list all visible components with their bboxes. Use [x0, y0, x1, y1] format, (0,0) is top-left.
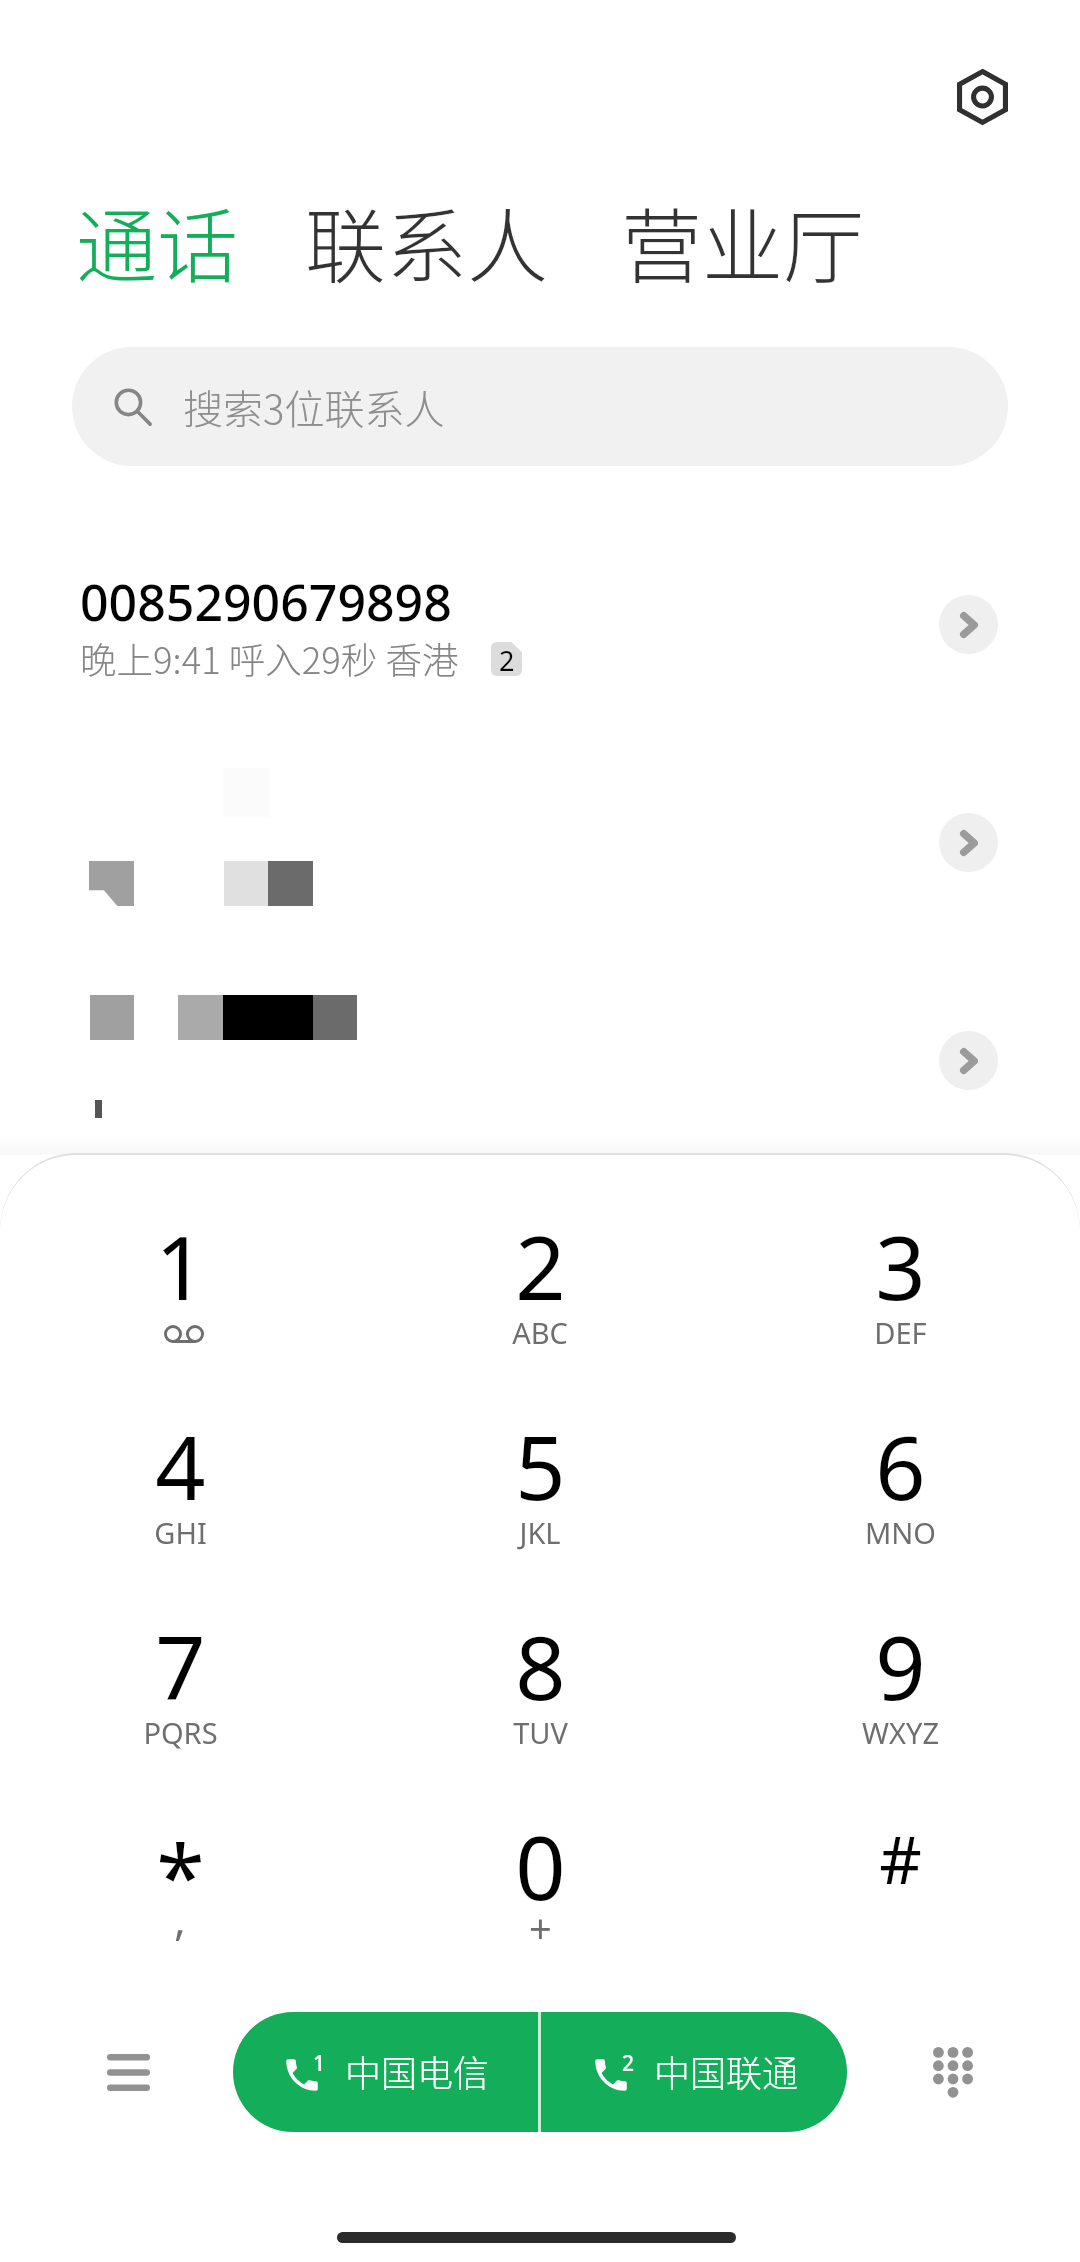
staticText: 3 [875, 1206, 926, 1326]
button[interactable]: 5 [360, 1399, 720, 1599]
staticText: 8 [515, 1606, 566, 1726]
button[interactable]: Call details [939, 1031, 998, 1090]
button[interactable]: 1 [233, 2012, 538, 2132]
staticText: 4 [155, 1406, 206, 1526]
staticText: 0085290679898 [80, 568, 452, 636]
staticText: ABC [512, 1313, 568, 1352]
staticText: JKL [519, 1513, 561, 1552]
button[interactable]: 6 [720, 1399, 1080, 1599]
staticText: + [529, 1900, 552, 1954]
button[interactable]: 联系人 [305, 182, 549, 299]
staticText: PQRS [143, 1713, 218, 1752]
button[interactable]: Call details [939, 595, 998, 654]
button[interactable]: 3 [720, 1199, 1080, 1399]
staticText: 搜索3位联系人 [183, 378, 445, 436]
button[interactable]: 1 [0, 1199, 360, 1399]
staticText: 2 [515, 1206, 566, 1326]
staticText: TUV [513, 1713, 568, 1752]
button[interactable]: 2 [541, 2012, 847, 2132]
button[interactable]: 4 [0, 1399, 360, 1599]
staticText: 9 [875, 1606, 926, 1726]
staticText: 2 [622, 2049, 635, 2078]
staticText: 1 [155, 1206, 206, 1326]
staticText: 中国联通 [654, 2045, 799, 2097]
button[interactable]: 2 [360, 1199, 720, 1399]
staticText: 7 [155, 1606, 206, 1726]
button[interactable]: Call details [939, 813, 998, 872]
button[interactable]: 9 [720, 1599, 1080, 1799]
staticText: * [156, 1815, 205, 1935]
button[interactable]: 0 [360, 1799, 720, 1999]
staticText: DEF [874, 1313, 927, 1352]
button[interactable]: Settings [934, 49, 1030, 145]
staticText: GHI [154, 1513, 207, 1552]
button[interactable]: 搜索3位联系人 [72, 347, 1008, 466]
staticText: # [879, 1813, 922, 1903]
button[interactable]: 0085290679898 [0, 515, 1080, 733]
staticText: 5 [515, 1406, 566, 1526]
button[interactable]: 7 [0, 1599, 360, 1799]
staticText: MNO [865, 1513, 936, 1552]
button[interactable]: # [720, 1799, 1080, 1999]
staticText: 中国电信 [345, 2045, 490, 2097]
button[interactable]: 通话 [76, 182, 239, 299]
button[interactable]: 8 [360, 1599, 720, 1799]
button[interactable]: 营业厅 [621, 182, 865, 299]
button[interactable]: Menu [78, 2022, 178, 2122]
staticText: 1 [313, 2049, 326, 2078]
staticText: 6 [875, 1406, 926, 1526]
staticText: 2 [499, 642, 515, 676]
staticText: , [174, 1888, 186, 1948]
staticText: 晚上9:41 呼入29秒 香港 [80, 632, 459, 685]
staticText: 0 [515, 1806, 566, 1926]
staticText: WXYZ [862, 1713, 939, 1752]
button[interactable]: Dialpad [903, 2022, 1003, 2122]
button[interactable]: * [0, 1799, 360, 1999]
